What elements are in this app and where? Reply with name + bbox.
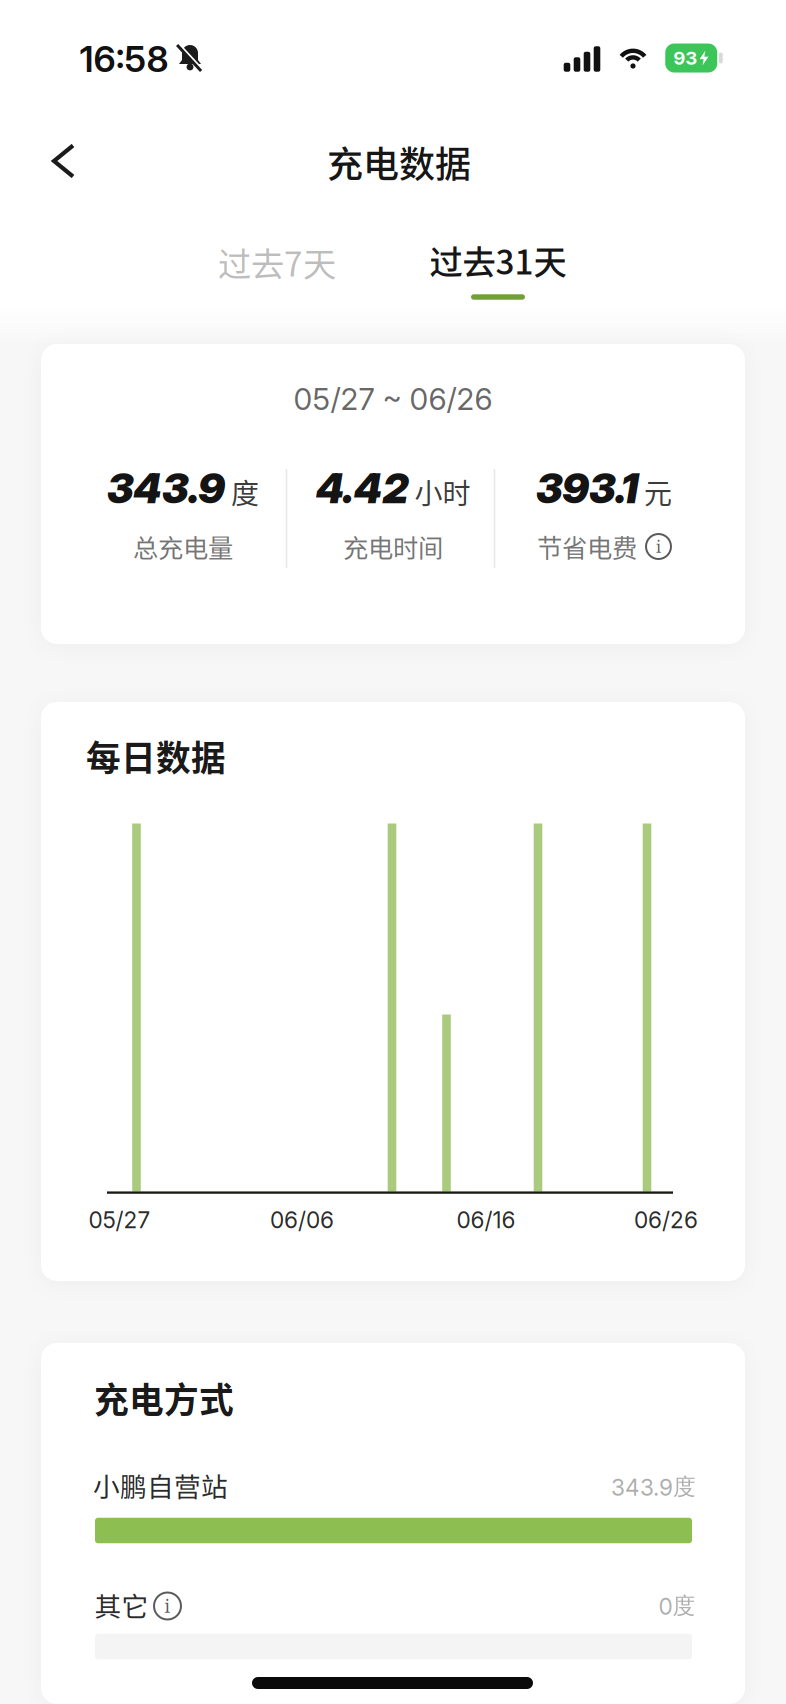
staticText: 393.1 bbox=[536, 463, 638, 513]
staticText: 05/27 ~ 06/26 bbox=[293, 381, 492, 417]
staticText: 节省电费 bbox=[537, 528, 637, 565]
staticText: 06/26 bbox=[634, 1206, 698, 1234]
staticText: 充电时间 bbox=[343, 528, 443, 565]
staticText: 93 bbox=[673, 47, 697, 69]
staticText: 每日数据 bbox=[86, 731, 226, 781]
staticText: 343.9度 bbox=[611, 1473, 696, 1501]
staticText: 06/06 bbox=[270, 1206, 334, 1234]
staticText: 过去7天 bbox=[218, 238, 336, 286]
staticText: 05/27 bbox=[88, 1206, 150, 1234]
button[interactable]: 过去7天 bbox=[177, 224, 377, 300]
staticText: 4.42 bbox=[315, 463, 408, 513]
button[interactable]: 返回 bbox=[34, 131, 94, 191]
button[interactable]: 过去31天 bbox=[398, 225, 598, 301]
staticText: 过去31天 bbox=[429, 236, 566, 284]
staticText: 343.9 bbox=[107, 463, 225, 513]
staticText: 充电方式 bbox=[94, 1373, 234, 1423]
staticText: 小鹏自营站 bbox=[93, 1466, 228, 1504]
staticText: 0度 bbox=[658, 1592, 695, 1620]
staticText: 元 bbox=[644, 472, 672, 512]
staticText: i bbox=[164, 1594, 170, 1618]
staticText: 其它 bbox=[94, 1585, 148, 1624]
staticText: 小时 bbox=[414, 472, 470, 512]
staticText: i bbox=[656, 536, 661, 557]
staticText: 16:58 bbox=[79, 37, 168, 81]
staticText: 总充电量 bbox=[133, 528, 233, 565]
button[interactable]: 其它说明 bbox=[154, 1592, 181, 1619]
staticText: 06/16 bbox=[456, 1206, 515, 1234]
staticText: 度 bbox=[231, 472, 259, 512]
button[interactable]: 节省电费说明 bbox=[646, 534, 671, 559]
staticText: 充电数据 bbox=[327, 136, 471, 188]
